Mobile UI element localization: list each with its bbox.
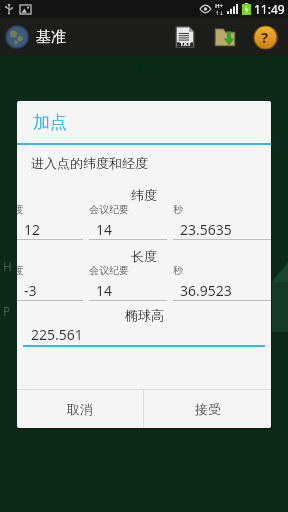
staticText: 11:49: [254, 1, 285, 17]
button[interactable]: 秒: [173, 203, 271, 240]
staticText: H+: [215, 2, 224, 10]
staticText: 度: [17, 264, 24, 277]
staticText: 加点: [33, 112, 67, 133]
staticText: 基准: [36, 28, 66, 47]
button[interactable]: Open folder: [208, 20, 242, 54]
staticText: 会议纪要: [89, 203, 129, 216]
staticText: 14: [96, 281, 113, 300]
staticText: P: [3, 303, 11, 319]
staticText: 225.561: [31, 325, 83, 344]
staticText: 23.5635: [180, 220, 232, 239]
button[interactable]: 秒: [173, 264, 271, 301]
button[interactable]: Export TXT: [168, 20, 202, 54]
staticText: 接受: [195, 401, 221, 417]
staticText: 14: [96, 220, 113, 239]
button[interactable]: Help: [248, 20, 282, 54]
button[interactable]: 度: [17, 203, 83, 240]
staticText: 长度: [131, 248, 157, 264]
button[interactable]: 度: [17, 264, 83, 301]
staticText: 度: [17, 203, 24, 216]
staticText: 12: [24, 220, 41, 239]
button[interactable]: 会议纪要: [89, 203, 167, 240]
staticText: ↑↓: [215, 10, 224, 16]
staticText: 会议纪要: [89, 264, 129, 277]
staticText: H: [3, 258, 12, 274]
staticText: 取消: [67, 401, 93, 417]
staticText: 纬度: [131, 187, 157, 203]
button[interactable]: 225.561: [23, 323, 265, 345]
staticText: 秒: [173, 264, 183, 277]
staticText: TXT: [180, 40, 191, 48]
button[interactable]: 接受: [144, 390, 271, 428]
button[interactable]: 会议纪要: [89, 264, 167, 301]
staticText: ?: [261, 27, 269, 47]
staticText: -3: [24, 281, 37, 300]
staticText: 进入点的纬度和经度: [31, 155, 148, 171]
staticText: 秒: [173, 203, 183, 216]
button[interactable]: 取消: [17, 390, 143, 428]
staticText: 36.9523: [180, 281, 232, 300]
staticText: 椭球高: [125, 307, 164, 323]
